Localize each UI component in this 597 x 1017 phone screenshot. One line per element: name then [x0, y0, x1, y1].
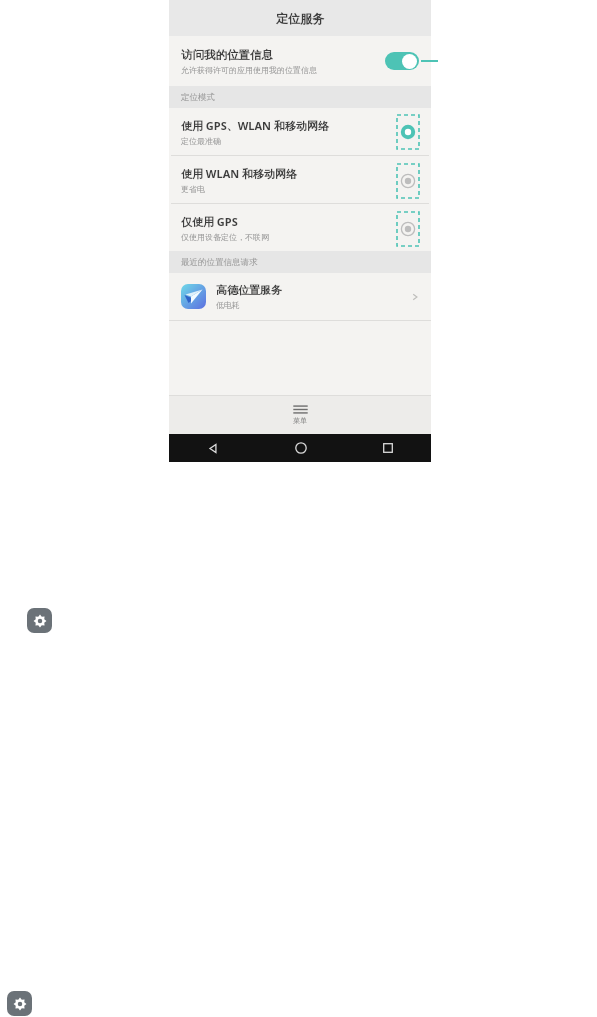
staticText: 定位模式 — [181, 92, 215, 103]
staticText: 低电耗 — [216, 300, 240, 310]
staticText: 高德位置服务 — [216, 283, 282, 297]
staticText: 使用 WLAN 和移动网络 — [181, 166, 298, 181]
button[interactable]: 访问我的位置信息开关 — [385, 52, 419, 70]
button[interactable]: 使用 WLAN 和移动网络 — [169, 156, 431, 203]
button[interactable]: Settings — [27, 608, 52, 633]
staticText: 最近的位置信息请求 — [181, 257, 258, 268]
button[interactable]: 访问我的位置信息 — [169, 36, 431, 86]
button[interactable]: 高德位置服务 — [169, 273, 431, 320]
staticText: 允许获得许可的应用使用我的位置信息 — [181, 65, 317, 75]
button[interactable]: 定位模式选项 — [396, 211, 420, 247]
staticText: 访问我的位置信息 — [181, 48, 273, 62]
staticText: 更省电 — [181, 184, 205, 194]
button[interactable]: Home — [257, 434, 344, 462]
staticText: 仅使用 GPS — [181, 214, 238, 229]
staticText: 定位服务 — [276, 11, 324, 26]
button[interactable]: 定位模式选项 — [396, 163, 420, 199]
button[interactable]: 仅使用 GPS — [169, 204, 431, 251]
staticText: 菜单 — [293, 416, 307, 425]
button[interactable]: Recents — [344, 434, 431, 462]
button[interactable]: Settings — [7, 991, 32, 1016]
button[interactable]: 定位模式选项 — [396, 114, 420, 150]
staticText: 仅使用设备定位，不联网 — [181, 232, 269, 242]
button[interactable]: 菜单 — [169, 396, 431, 434]
button[interactable]: Back — [169, 434, 257, 462]
staticText: 使用 GPS、WLAN 和移动网络 — [181, 118, 329, 133]
button[interactable]: 使用 GPS、WLAN 和移动网络 — [169, 108, 431, 155]
staticText: 定位最准确 — [181, 136, 221, 146]
